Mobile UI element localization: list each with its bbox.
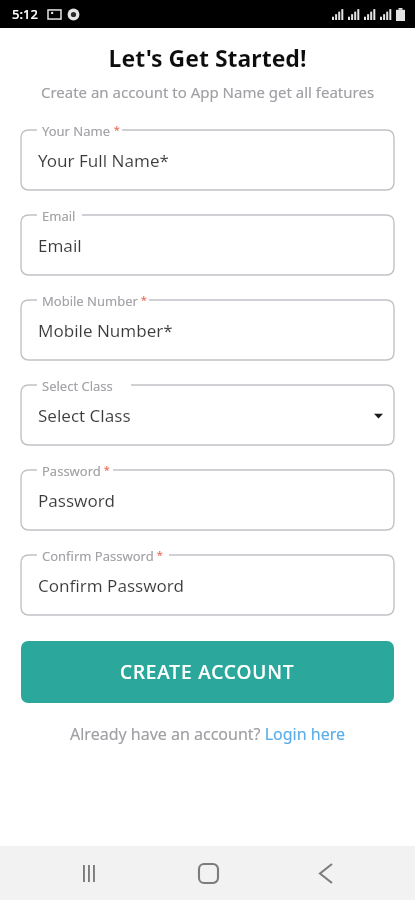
staticText: Your Full Name* [38, 149, 169, 172]
staticText: Already have an account? Login here [70, 723, 345, 745]
button[interactable]: Select Class [21, 385, 394, 445]
button[interactable]: Already have an account? Login here [0, 723, 415, 745]
staticText: Your Name [42, 122, 111, 140]
staticText: Create an account to App Name get all fe… [34, 82, 381, 102]
staticText: Confirm Password [38, 574, 184, 597]
staticText: * [154, 547, 163, 562]
staticText: Select Class [38, 404, 131, 427]
button[interactable]: Password [21, 470, 394, 530]
staticText: Email [42, 207, 76, 225]
staticText: Password [38, 489, 115, 512]
staticText: Mobile Number* [38, 319, 173, 342]
staticText: Password [42, 462, 101, 480]
button[interactable]: Back [297, 846, 355, 900]
button[interactable]: Recent apps [60, 846, 118, 900]
button[interactable]: CREATE ACCOUNT [21, 641, 394, 703]
staticText: * [111, 122, 120, 137]
button[interactable]: Your Name [21, 130, 394, 190]
staticText: Select Class [42, 377, 113, 395]
button[interactable]: Home [179, 846, 237, 900]
button[interactable]: Confirm Password [21, 555, 394, 615]
button[interactable]: Mobile Number [21, 300, 394, 360]
staticText: CREATE ACCOUNT [120, 659, 295, 685]
staticText: Confirm Password [42, 547, 154, 565]
staticText: * [101, 462, 110, 477]
button[interactable]: Email [21, 215, 394, 275]
staticText: Mobile Number [42, 292, 138, 310]
staticText: Email [38, 234, 82, 257]
staticText: * [138, 292, 147, 307]
staticText: Let's Get Started! [0, 42, 415, 73]
staticText: 5:12 [12, 5, 38, 23]
